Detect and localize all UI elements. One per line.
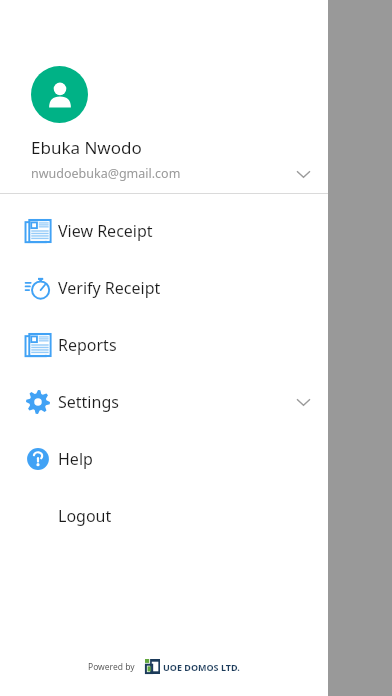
staticText: Settings (58, 391, 119, 413)
staticText: Logout (58, 505, 112, 527)
staticText: Powered by (88, 661, 135, 673)
staticText: ₦ 51,600 (20, 330, 88, 353)
button[interactable]: Verify Receipt (0, 259, 328, 316)
staticText: ₦ 8,500 (20, 383, 78, 406)
staticText: ₦ 4,000 (20, 277, 78, 300)
staticText: 100 (43, 502, 66, 520)
button[interactable]: Logout (0, 487, 328, 544)
button[interactable]: Current Month Target (11, 309, 381, 358)
staticText: View Receipt (58, 220, 153, 242)
staticText: Individual (20, 460, 62, 472)
staticText: UOE DOMOS LTD. (163, 661, 240, 673)
staticText: ₦0 (20, 167, 45, 196)
button[interactable]: Current Month (11, 256, 381, 305)
staticText: Total Collection (36, 139, 106, 151)
staticText: Reports (58, 334, 117, 356)
staticText: nwudoebuka@gmail.com (31, 165, 181, 182)
staticText: ₦ 11,000 (20, 436, 88, 459)
staticText: Ebuka Nwodo (31, 136, 142, 159)
button[interactable]: Open navigation drawer (14, 44, 50, 80)
button[interactable]: Settings (0, 373, 328, 430)
staticText: IGR COLLECTION (14, 224, 151, 247)
button[interactable]: ₦ 2,018 Collection (11, 362, 381, 411)
staticText: Help (58, 448, 93, 470)
button[interactable]: Help (0, 430, 328, 487)
staticText: Verify Receipt (58, 277, 161, 299)
button[interactable]: View Receipt (0, 202, 328, 259)
button[interactable]: Ebuka Nwodo (0, 33, 328, 193)
button[interactable] (0, 0, 392, 696)
button[interactable]: Tax Registered (11, 415, 381, 477)
button[interactable]: Reports (0, 316, 328, 373)
